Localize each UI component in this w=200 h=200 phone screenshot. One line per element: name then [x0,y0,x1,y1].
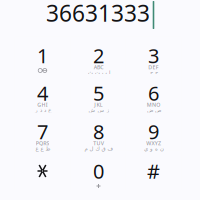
staticText: ف ق ك ل م [84,146,113,152]
staticText: TUV [93,140,104,147]
button[interactable]: 0 [70,152,126,190]
button[interactable]: 8 [70,112,126,150]
staticText: ا ب ت ث [87,70,109,76]
button[interactable]: 4 [14,74,70,112]
staticText: ج ح [149,70,157,76]
staticText: ز س ش [88,107,109,113]
staticText: ن ه و ي [143,146,163,152]
staticText: 5 [93,80,104,106]
button[interactable]: 2 [70,36,126,74]
staticText: 8 [93,118,104,145]
staticText: 7 [37,118,48,145]
staticText: 2 [93,42,104,69]
staticText: MNO [147,101,160,108]
staticText: ظ ع غ [35,146,50,152]
staticText: DEF [148,64,159,71]
staticText: 0 [93,158,104,184]
staticText: WXYZ [146,140,161,147]
staticText: 9 [148,118,159,145]
staticText: 36631333 [46,0,150,28]
button[interactable]: 9 [125,112,181,150]
button[interactable]: 7 [14,112,70,150]
button[interactable]: 6 [125,74,181,112]
staticText: خ د ذ ر [34,107,50,113]
staticText: 6 [148,80,159,106]
staticText: 4 [37,80,48,106]
staticText: ABC [94,64,103,71]
staticText: 3 [148,42,159,69]
button[interactable]: 3 [125,36,181,74]
staticText: GHI [37,101,48,108]
staticText: PQRS [36,140,49,147]
button[interactable]: # [125,152,181,190]
staticText: JKL [94,101,103,108]
staticText: ص ض [146,107,160,113]
button[interactable]: 1 [14,36,70,74]
staticText: 1 [37,42,48,69]
staticText: # [147,158,160,184]
button[interactable]: 5 [70,74,126,112]
button[interactable] [14,152,70,190]
